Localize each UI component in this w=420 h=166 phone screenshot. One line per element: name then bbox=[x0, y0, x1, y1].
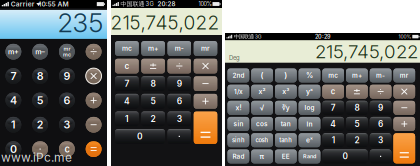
button[interactable]: tan bbox=[275, 117, 297, 131]
button[interactable]: m– bbox=[32, 44, 48, 60]
button[interactable]: 5 bbox=[346, 117, 368, 131]
button[interactable]: x! bbox=[228, 101, 249, 115]
button[interactable]: √ bbox=[251, 101, 273, 115]
button[interactable]: 6 bbox=[59, 92, 75, 108]
button[interactable]: mr bbox=[59, 44, 75, 60]
button[interactable] bbox=[346, 84, 368, 99]
button[interactable]: 1 bbox=[322, 133, 344, 147]
button[interactable]: sinh bbox=[228, 133, 249, 147]
button[interactable]: c bbox=[59, 141, 75, 157]
staticText: c bbox=[331, 87, 336, 96]
button[interactable]: 0 bbox=[5, 141, 21, 157]
staticText: 6 bbox=[378, 119, 383, 129]
button[interactable] bbox=[393, 133, 415, 163]
staticText: mr bbox=[201, 44, 210, 52]
button[interactable] bbox=[168, 129, 191, 144]
button[interactable] bbox=[86, 141, 101, 157]
button[interactable]: 2nd bbox=[228, 68, 249, 82]
button[interactable] bbox=[194, 94, 217, 109]
button[interactable]: tanh bbox=[275, 133, 297, 147]
button[interactable]: 4 bbox=[115, 94, 139, 109]
button[interactable] bbox=[86, 117, 101, 133]
staticText: 5 bbox=[37, 94, 44, 107]
button[interactable]: 8 bbox=[141, 76, 165, 91]
button[interactable]: m+ bbox=[141, 41, 165, 56]
staticText: m+ bbox=[148, 44, 158, 52]
button[interactable] bbox=[194, 111, 217, 144]
staticText: 5 bbox=[151, 96, 156, 106]
button[interactable] bbox=[370, 84, 391, 99]
button[interactable] bbox=[393, 84, 415, 99]
button[interactable]: 2 bbox=[32, 117, 48, 133]
button[interactable]: yˣ bbox=[299, 84, 320, 99]
button[interactable] bbox=[32, 141, 48, 157]
button[interactable]: 1 bbox=[5, 117, 21, 133]
button[interactable]: 4 bbox=[322, 117, 344, 131]
button[interactable] bbox=[86, 68, 101, 84]
button[interactable]: ( bbox=[251, 68, 273, 82]
button[interactable]: cos bbox=[251, 117, 273, 131]
button[interactable]: 1 bbox=[115, 111, 139, 126]
button[interactable]: 9 bbox=[370, 101, 391, 115]
button[interactable]: 9 bbox=[59, 68, 75, 84]
button[interactable]: 6 bbox=[370, 117, 391, 131]
button[interactable]: m- bbox=[370, 68, 391, 82]
staticText: 4 bbox=[330, 119, 336, 129]
button[interactable]: log bbox=[299, 101, 320, 115]
button[interactable]: m+ bbox=[5, 44, 21, 60]
button[interactable]: 0 bbox=[115, 129, 165, 144]
button[interactable]: 6 bbox=[168, 94, 191, 109]
button[interactable]: mr bbox=[393, 68, 415, 82]
button[interactable] bbox=[370, 149, 391, 163]
button[interactable]: c bbox=[322, 84, 344, 99]
button[interactable]: 5 bbox=[32, 92, 48, 108]
staticText: 2 bbox=[37, 118, 44, 131]
button[interactable]: ln bbox=[299, 117, 320, 131]
button[interactable] bbox=[393, 101, 415, 115]
button[interactable]: 7 bbox=[5, 68, 21, 84]
button[interactable]: 0 bbox=[322, 149, 368, 163]
staticText: 100% bbox=[199, 1, 212, 7]
button[interactable] bbox=[393, 117, 415, 131]
button[interactable]: EE bbox=[275, 149, 297, 163]
button[interactable]: 3 bbox=[370, 133, 391, 147]
button[interactable]: 3 bbox=[59, 117, 75, 133]
button[interactable]: c bbox=[115, 59, 139, 73]
button[interactable]: 9 bbox=[168, 76, 191, 91]
button[interactable]: ∛y bbox=[275, 101, 297, 115]
button[interactable]: mc bbox=[322, 68, 344, 82]
button[interactable]: 4 bbox=[5, 92, 21, 108]
button[interactable]: % bbox=[299, 68, 320, 82]
button[interactable]: 7 bbox=[322, 101, 344, 115]
button[interactable]: Rad bbox=[228, 149, 249, 163]
button[interactable]: 7 bbox=[115, 76, 139, 91]
button[interactable] bbox=[86, 92, 101, 108]
button[interactable]: 2 bbox=[346, 133, 368, 147]
button[interactable]: 2 bbox=[141, 111, 165, 126]
button[interactable]: 5 bbox=[141, 94, 165, 109]
button[interactable] bbox=[86, 44, 101, 60]
staticText: ln bbox=[306, 120, 312, 128]
button[interactable] bbox=[168, 59, 191, 73]
staticText: m- bbox=[175, 44, 184, 52]
staticText: 20:28 bbox=[157, 0, 175, 8]
button[interactable] bbox=[141, 59, 165, 73]
button[interactable]: cosh bbox=[251, 133, 273, 147]
button[interactable]: 1/x bbox=[228, 84, 249, 99]
button[interactable]: x² bbox=[251, 84, 273, 99]
button[interactable]: x³ bbox=[275, 84, 297, 99]
button[interactable]: π bbox=[251, 149, 273, 163]
button[interactable]: mc bbox=[115, 41, 139, 56]
button[interactable]: Rand bbox=[299, 149, 320, 163]
button[interactable]: sin bbox=[228, 117, 249, 131]
button[interactable]: mr bbox=[194, 41, 217, 56]
button[interactable] bbox=[194, 76, 217, 91]
button[interactable]: eˣ bbox=[299, 133, 320, 147]
button[interactable]: m- bbox=[168, 41, 191, 56]
button[interactable]: m+ bbox=[346, 68, 368, 82]
button[interactable]: 3 bbox=[168, 111, 191, 126]
button[interactable]: 8 bbox=[346, 101, 368, 115]
button[interactable] bbox=[194, 59, 217, 73]
button[interactable]: 8 bbox=[32, 68, 48, 84]
button[interactable]: ) bbox=[275, 68, 297, 82]
